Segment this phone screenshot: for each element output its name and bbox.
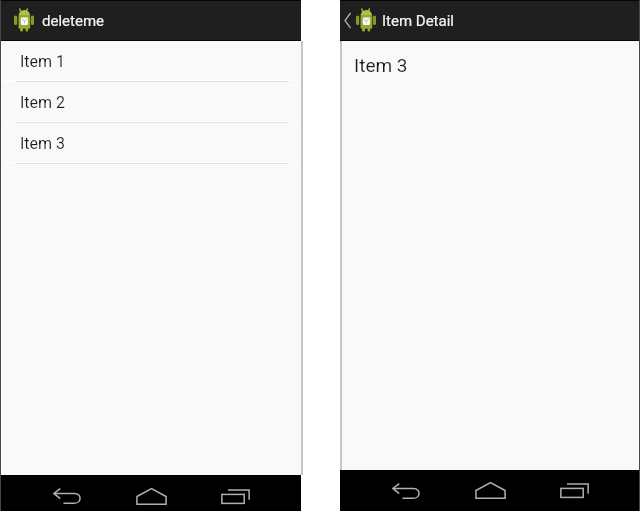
button[interactable]: Back [46,478,88,511]
button[interactable]: Item 2 [0,82,301,123]
staticText: deleteme [42,12,104,30]
button[interactable]: Home [130,478,172,511]
button[interactable]: Recent apps [553,470,595,511]
staticText: Item 3 [354,54,408,76]
button[interactable]: Back [385,470,427,511]
button[interactable]: Item 1 [0,41,301,82]
staticText: Item 2 [20,93,66,112]
staticText: Item Detail [382,12,454,30]
staticText: Item 3 [20,134,66,153]
button[interactable]: Item 3 [0,123,301,164]
button[interactable]: Home [469,470,511,511]
button[interactable]: Navigate up [340,1,355,40]
button[interactable]: Recent apps [214,478,256,511]
staticText: Item 1 [20,52,66,71]
